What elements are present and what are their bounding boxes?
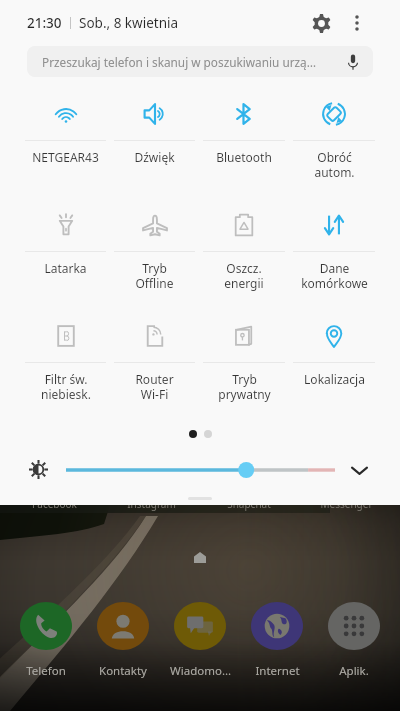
staticText: Aplik. bbox=[339, 663, 369, 679]
button[interactable]: Router Wi-Fi bbox=[110, 309, 199, 420]
staticText: Messenger bbox=[320, 497, 373, 511]
staticText: Dane komórkowe bbox=[301, 260, 368, 291]
staticText: Przeszukaj telefon i skanuj w poszukiwan… bbox=[42, 54, 317, 70]
staticText: NETGEAR43 bbox=[32, 149, 99, 165]
staticText: Facebook bbox=[32, 497, 77, 511]
button[interactable]: NETGEAR43 bbox=[21, 87, 110, 198]
button[interactable]: Dźwięk bbox=[110, 87, 199, 198]
button[interactable]: Settings bbox=[304, 6, 338, 40]
button[interactable]: Aplik. bbox=[316, 602, 392, 679]
staticText: Tryb prywatny bbox=[218, 371, 271, 402]
staticText: Snapchat bbox=[227, 497, 271, 511]
staticText: Bluetooth bbox=[216, 149, 272, 165]
button[interactable]: Kontakty bbox=[85, 602, 161, 679]
staticText: Tryb Offline bbox=[135, 260, 174, 291]
button[interactable]: Voice search bbox=[342, 51, 364, 73]
staticText: Internet bbox=[255, 663, 300, 679]
button[interactable]: Dane komórkowe bbox=[289, 198, 379, 309]
button[interactable]: Internet bbox=[239, 602, 315, 679]
button[interactable]: Latarka bbox=[21, 198, 110, 309]
button[interactable]: Oszcz. energii bbox=[199, 198, 289, 309]
staticText: Telefon bbox=[26, 663, 66, 679]
staticText: Router Wi-Fi bbox=[135, 371, 174, 402]
staticText: Oszcz. energii bbox=[224, 260, 264, 291]
button[interactable]: Telefon bbox=[8, 602, 84, 679]
button[interactable]: Filtr św. niebiesk. bbox=[21, 309, 110, 420]
staticText: Latarka bbox=[44, 260, 87, 276]
button[interactable]: Obróć autom. bbox=[289, 87, 379, 198]
staticText: Dźwięk bbox=[134, 149, 175, 165]
staticText: Filtr św. niebiesk. bbox=[41, 371, 91, 402]
staticText: Obróć autom. bbox=[314, 149, 355, 180]
staticText: Wiadomo… bbox=[170, 663, 231, 679]
staticText: Instagram bbox=[127, 497, 176, 511]
button[interactable]: More options bbox=[342, 8, 372, 38]
staticText: Kontakty bbox=[99, 663, 147, 679]
button[interactable]: Tryb Offline bbox=[110, 198, 199, 309]
button[interactable]: Tryb prywatny bbox=[199, 309, 289, 420]
button[interactable]: Wiadomo… bbox=[162, 602, 238, 679]
staticText: Lokalizacja bbox=[304, 371, 365, 387]
button[interactable]: Bluetooth bbox=[199, 87, 289, 198]
button[interactable]: Expand quick settings bbox=[345, 456, 373, 484]
button[interactable]: Lokalizacja bbox=[289, 309, 379, 420]
button[interactable]: Przeszukaj telefon i skanuj w poszukiwan… bbox=[27, 46, 373, 77]
staticText: 21:30 bbox=[27, 14, 62, 32]
staticText: Sob., 8 kwietnia bbox=[79, 14, 179, 32]
